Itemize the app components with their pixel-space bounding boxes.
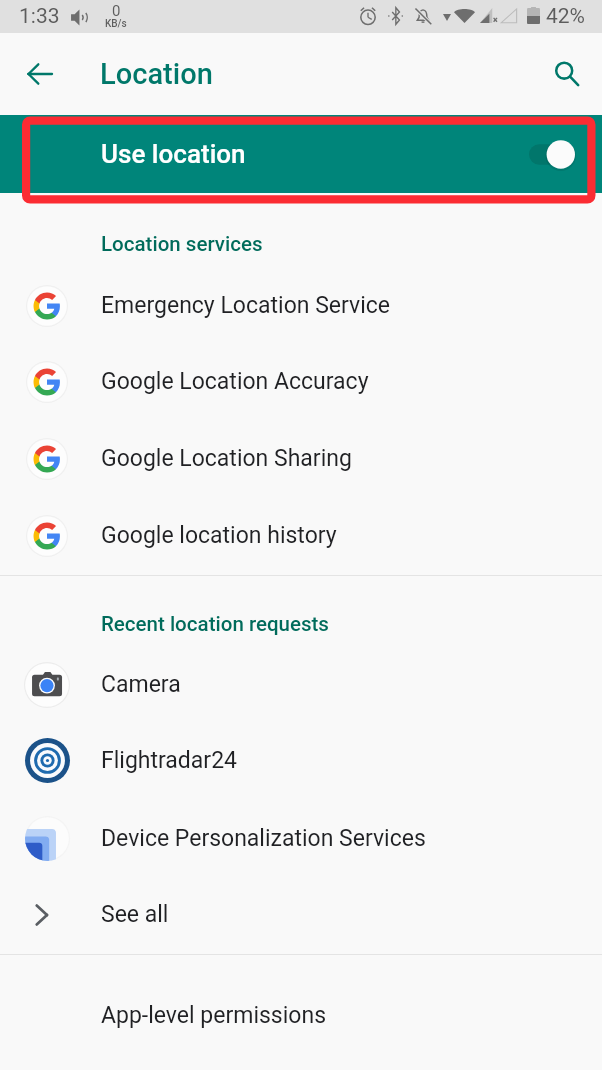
button[interactable]: Flightradar24 <box>0 722 602 799</box>
button[interactable]: App-level permissions <box>0 977 602 1054</box>
button[interactable]: Google location history <box>0 497 602 574</box>
button[interactable]: Emergency Location Service <box>0 267 602 344</box>
button[interactable]: Search <box>544 51 590 97</box>
staticText: 0 <box>112 2 121 20</box>
staticText: Camera <box>101 671 181 698</box>
staticText: 42% <box>546 4 585 29</box>
staticText: Flightradar24 <box>101 747 237 774</box>
staticText: Google Location Accuracy <box>101 368 369 395</box>
staticText: Device Personalization Services <box>101 825 426 852</box>
staticText: Google Location Sharing <box>101 445 352 472</box>
staticText: 1:33 <box>19 4 60 29</box>
button[interactable]: Google Location Sharing <box>0 420 602 497</box>
button[interactable]: Use location <box>0 115 602 193</box>
button[interactable]: Device Personalization Services <box>0 800 602 877</box>
staticText: Use location <box>101 139 246 169</box>
button[interactable]: Navigate up <box>17 51 63 97</box>
staticText: Location <box>100 57 213 91</box>
staticText: App-level permissions <box>101 1002 327 1029</box>
staticText: Emergency Location Service <box>101 292 390 319</box>
staticText: Google location history <box>101 522 337 549</box>
button[interactable]: Camera <box>0 646 602 723</box>
staticText: Recent location requests <box>101 612 329 636</box>
staticText: See all <box>101 901 169 928</box>
staticText: Location services <box>101 232 263 256</box>
button[interactable]: See all <box>0 876 602 953</box>
staticText: KB/s <box>105 18 127 30</box>
button[interactable]: Google Location Accuracy <box>0 343 602 420</box>
